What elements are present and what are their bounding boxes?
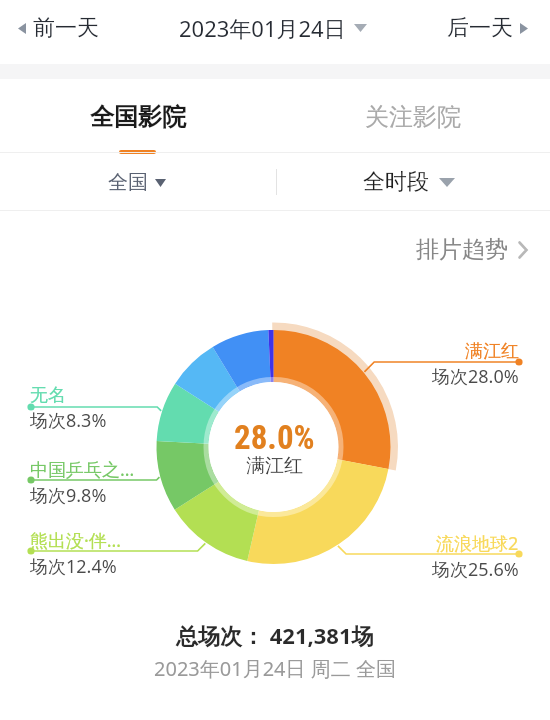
- staticText: 中国乒乓之…: [30, 457, 135, 482]
- button[interactable]: 全国: [0, 153, 275, 211]
- button[interactable]: 2023年01月24日: [179, 5, 367, 51]
- staticText: 2023年01月24日: [179, 13, 346, 43]
- button[interactable]: 前一天: [0, 6, 109, 50]
- staticText: 关注影院: [365, 102, 461, 132]
- staticText: 前一天: [33, 14, 99, 42]
- button[interactable]: 全时段: [275, 153, 550, 211]
- staticText: 总场次： 421,381场: [176, 620, 374, 650]
- staticText: 流浪地球2: [436, 531, 519, 556]
- staticText: 全国: [108, 170, 148, 195]
- staticText: 场次25.6%: [432, 557, 519, 582]
- staticText: 场次12.4%: [30, 554, 117, 579]
- staticText: 满江红: [246, 454, 303, 478]
- button[interactable]: 关注影院: [275, 79, 550, 153]
- staticText: 场次9.8%: [30, 483, 107, 508]
- staticText: 无名: [30, 384, 66, 407]
- staticText: 满江红: [465, 340, 519, 363]
- staticText: 熊出没·伴…: [30, 528, 122, 553]
- staticText: 排片趋势: [416, 235, 508, 264]
- button[interactable]: 排片趋势: [402, 225, 550, 274]
- button[interactable]: 全国影院: [0, 79, 275, 153]
- staticText: 2023年01月24日 周二 全国: [154, 655, 396, 682]
- staticText: 全时段: [363, 168, 429, 196]
- staticText: 场次8.3%: [30, 408, 107, 433]
- staticText: 场次28.0%: [432, 364, 519, 389]
- staticText: 后一天: [447, 14, 513, 42]
- staticText: 28.0%: [234, 418, 315, 457]
- staticText: 全国影院: [90, 102, 186, 132]
- button[interactable]: 后一天: [437, 6, 550, 50]
